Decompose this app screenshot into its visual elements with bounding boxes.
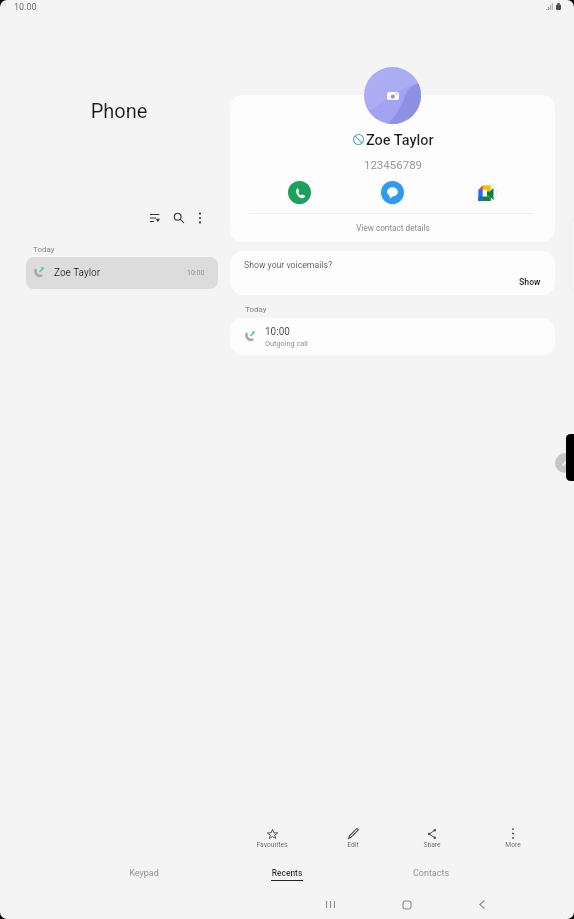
button[interactable]: Edit bbox=[323, 822, 383, 854]
button[interactable]: 10:00 bbox=[230, 318, 555, 355]
button[interactable]: Recents bbox=[232, 860, 342, 888]
button[interactable]: Back bbox=[452, 893, 512, 916]
button[interactable]: Favourites bbox=[242, 822, 302, 854]
staticText: 10:00 bbox=[187, 269, 205, 277]
staticText: Phone bbox=[19, 99, 219, 122]
staticText: Edit bbox=[323, 841, 383, 849]
staticText: Share bbox=[402, 841, 462, 849]
staticText: Contacts bbox=[376, 868, 486, 879]
button[interactable]: Zoe Taylor bbox=[26, 257, 218, 289]
staticText: 123456789 bbox=[293, 158, 493, 171]
button[interactable]: Contacts bbox=[376, 860, 486, 888]
button[interactable]: View contact details bbox=[230, 214, 555, 242]
button[interactable]: Message bbox=[381, 181, 404, 204]
staticText: Recents bbox=[232, 868, 342, 878]
button[interactable]: Search bbox=[165, 204, 192, 231]
button[interactable]: Keypad bbox=[89, 860, 199, 888]
staticText: Zoe Taylor bbox=[54, 267, 101, 279]
staticText: Zoe Taylor bbox=[366, 132, 434, 149]
button[interactable]: Call bbox=[288, 181, 311, 204]
button[interactable]: More bbox=[483, 822, 543, 854]
staticText: Favourites bbox=[242, 841, 302, 849]
button[interactable]: Share bbox=[402, 822, 462, 854]
staticText: View contact details bbox=[293, 223, 493, 233]
staticText: Today bbox=[33, 245, 55, 254]
button[interactable]: Recent apps bbox=[300, 893, 360, 916]
staticText: More bbox=[483, 841, 543, 849]
staticText: Keypad bbox=[89, 868, 199, 879]
staticText: Outgoing call bbox=[265, 339, 308, 348]
button[interactable]: Show your voicemails? bbox=[230, 251, 555, 295]
button[interactable]: Edge panel bbox=[566, 434, 574, 481]
button[interactable]: Home bbox=[377, 893, 437, 916]
button[interactable]: Sort bbox=[141, 204, 168, 231]
button[interactable]: Video call bbox=[474, 181, 497, 204]
staticText: Today bbox=[245, 305, 267, 314]
staticText: 10:00 bbox=[265, 326, 290, 338]
staticText: 10.00 bbox=[14, 2, 37, 13]
staticText: Show bbox=[519, 277, 541, 287]
button[interactable]: More options bbox=[186, 204, 213, 231]
staticText: Show your voicemails? bbox=[244, 260, 332, 270]
